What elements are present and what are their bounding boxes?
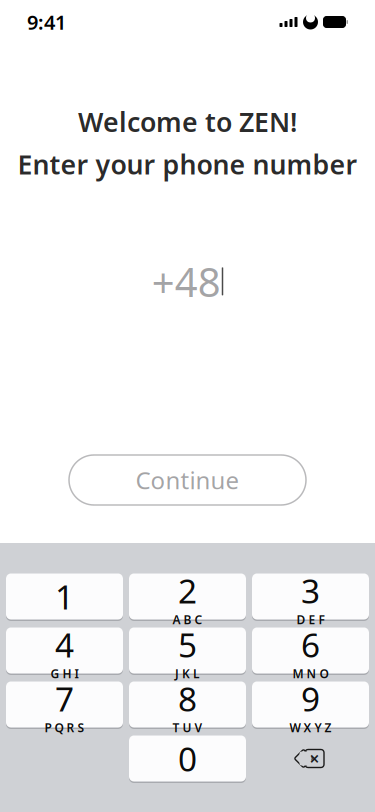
staticText: 5 [178, 622, 197, 667]
button[interactable]: 2 [129, 572, 246, 620]
staticText: G H I [50, 666, 78, 682]
staticText: A B C [172, 612, 202, 628]
staticText: 7 [55, 676, 74, 721]
button[interactable]: 4 [6, 626, 123, 674]
button[interactable]: 0 [129, 734, 246, 782]
staticText: T U V [172, 720, 202, 736]
staticText: D E F [296, 612, 324, 628]
staticText: M N O [292, 666, 328, 682]
button[interactable]: 8 [129, 680, 246, 728]
staticText: 3 [301, 568, 320, 613]
staticText: J K L [175, 666, 200, 682]
staticText: P Q R S [44, 720, 84, 736]
button[interactable]: Continue [69, 455, 306, 505]
staticText: × [309, 747, 319, 770]
button[interactable]: 1 [6, 572, 123, 620]
staticText: 4 [55, 622, 74, 667]
button[interactable]: 9 [252, 680, 369, 728]
staticText: 2 [178, 568, 197, 613]
staticText: 9:41 [27, 9, 66, 35]
staticText: Welcome to ZEN! [78, 104, 297, 139]
staticText: 1 [55, 574, 74, 619]
staticText: Enter your phone number [17, 146, 357, 182]
staticText: 0 [178, 736, 197, 781]
button[interactable]: 5 [129, 626, 246, 674]
button[interactable]: Delete [252, 734, 369, 782]
button[interactable]: 6 [252, 626, 369, 674]
staticText: +48 [152, 255, 221, 308]
staticText: Continue [135, 464, 239, 496]
staticText: W X Y Z [289, 720, 331, 736]
button[interactable]: 7 [6, 680, 123, 728]
staticText: 8 [178, 676, 197, 721]
staticText: 6 [301, 622, 320, 667]
button[interactable]: 3 [252, 572, 369, 620]
staticText: 9 [301, 676, 320, 721]
